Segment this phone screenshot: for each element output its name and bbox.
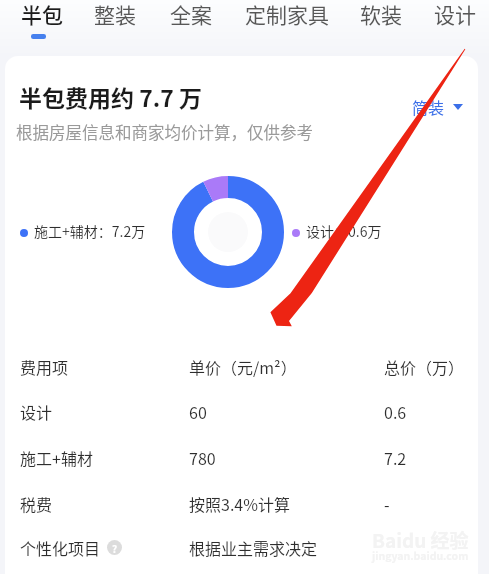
button[interactable]: 设计：0.6万 (289, 218, 385, 244)
staticText: 设计：0.6万 (306, 221, 382, 241)
staticText: Baidu 经验 (372, 526, 469, 554)
button[interactable]: 施工+辅材 (5, 435, 478, 479)
staticText: 0.6 (384, 400, 407, 423)
staticText: jingyan.baidu.com (372, 548, 469, 563)
button[interactable]: 全案 (166, 0, 216, 46)
staticText: 7.2 (384, 446, 407, 469)
button[interactable]: 个性化项目 (5, 525, 478, 569)
staticText: 半包 (21, 0, 63, 29)
staticText: 全案 (170, 0, 212, 29)
staticText: 费用项 (20, 355, 69, 378)
button[interactable]: 整装 (90, 0, 140, 46)
staticText: 半包费用约 7.7 万 (19, 80, 203, 113)
button[interactable]: 设计 (430, 0, 480, 46)
button[interactable]: 半包 (17, 0, 67, 46)
staticText: 整装 (94, 0, 136, 29)
button[interactable]: 简装 (407, 89, 468, 124)
button[interactable]: 设计 (5, 389, 478, 433)
staticText: 根据业主需求决定 (189, 536, 318, 559)
button[interactable]: 费用项 (5, 344, 478, 388)
staticText: 施工+辅材 (20, 446, 93, 469)
staticText: 60 (189, 400, 207, 423)
staticText: 单价（元/m²） (189, 355, 297, 378)
staticText: 按照3.4%计算 (189, 492, 290, 515)
staticText: 总价（万） (384, 355, 465, 378)
staticText: 施工+辅材：7.2万 (34, 221, 146, 241)
staticText: ? (112, 541, 118, 555)
staticText: 设计 (434, 0, 476, 29)
staticText: 简装 (412, 95, 445, 118)
button[interactable]: 施工+辅材：7.2万 (17, 218, 149, 244)
staticText: 个性化项目 (20, 536, 101, 559)
button[interactable]: 定制家具 (239, 0, 335, 46)
button[interactable]: 税费 (5, 481, 478, 525)
other: 帮助说明 (107, 540, 122, 555)
staticText: 根据房屋信息和商家均价计算，仅供参考 (16, 120, 313, 144)
staticText: 设计 (20, 400, 53, 423)
staticText: - (384, 492, 390, 515)
staticText: 软装 (360, 0, 402, 29)
staticText: 税费 (20, 492, 53, 515)
staticText: 定制家具 (245, 0, 329, 29)
button[interactable]: 软装 (356, 0, 406, 46)
staticText: 780 (189, 446, 216, 469)
